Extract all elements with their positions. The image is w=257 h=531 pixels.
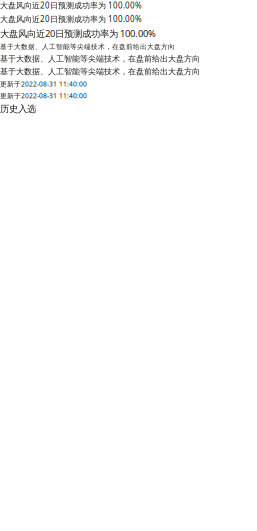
staticText: 历史入选 [0, 103, 36, 115]
staticText: 基于大数据、人工智能等尖端技术，在盘前给出大盘方向 [0, 54, 200, 64]
staticText: 大盘风向近20日预测成功率为 100.00% [0, 14, 142, 24]
staticText: 大盘风向近20日预测成功率为 100.00% [0, 27, 156, 40]
staticText: 基于大数据、人工智能等尖端技术，在盘前给出大盘方向 [0, 67, 200, 76]
staticText: 更新于2022-08-31 11:40:00 [0, 79, 87, 88]
staticText: 大盘风向近20日预测成功率为 100.00% [0, 0, 142, 11]
staticText: 基于大数据、人工智能等尖端技术，在盘前给出大盘方向 [0, 43, 175, 51]
staticText: 更新于2022-08-31 11:40:00 [0, 91, 87, 100]
